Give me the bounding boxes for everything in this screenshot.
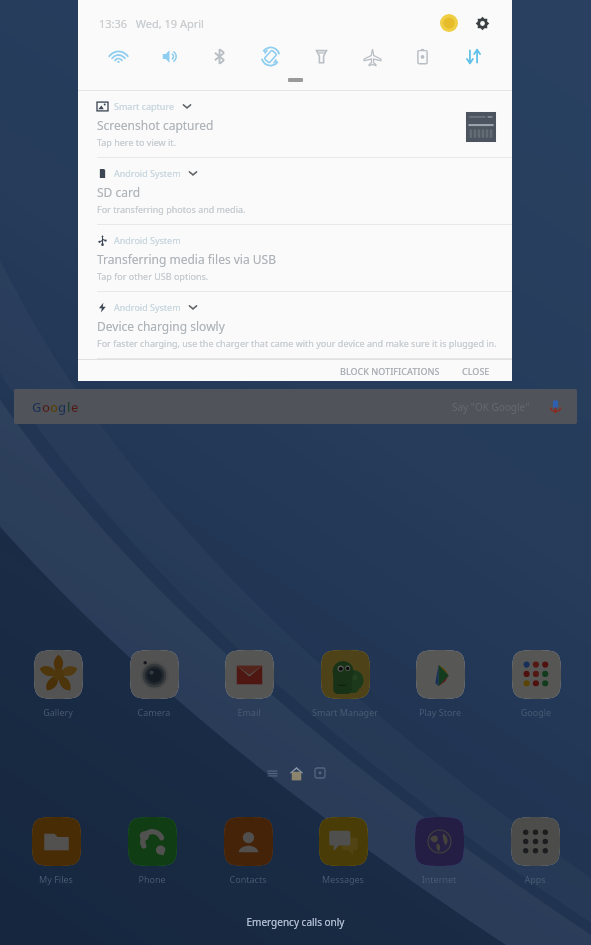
button[interactable]: Blue light filter bbox=[437, 11, 461, 35]
staticText: BLOCK NOTIFICATIONS bbox=[340, 365, 440, 377]
button[interactable]: Bluetooth bbox=[204, 41, 234, 71]
staticText: Smart Manager bbox=[305, 706, 385, 718]
staticText: Transferring media files via USB bbox=[97, 251, 276, 267]
staticText: Phone bbox=[112, 873, 192, 885]
button[interactable]: Smart Manager bbox=[305, 650, 385, 718]
button[interactable]: Android System bbox=[78, 158, 512, 225]
button[interactable]: Phone bbox=[112, 817, 192, 885]
staticText: Internet bbox=[399, 873, 479, 885]
staticText: Tap for other USB options. bbox=[97, 270, 209, 282]
staticText: CLOSE bbox=[462, 365, 490, 377]
button[interactable]: Messages bbox=[303, 817, 383, 885]
button[interactable]: Power saving bbox=[407, 41, 437, 71]
staticText: Tap here to view it. bbox=[97, 136, 177, 148]
staticText: Android System bbox=[114, 301, 181, 313]
button[interactable]: Wi-Fi bbox=[103, 41, 133, 71]
staticText: Email bbox=[209, 706, 289, 718]
staticText: Contacts bbox=[208, 873, 288, 885]
button[interactable]: Android System bbox=[78, 292, 512, 359]
staticText: Screenshot captured bbox=[97, 117, 214, 133]
staticText: G bbox=[32, 398, 42, 416]
button[interactable]: Email bbox=[209, 650, 289, 718]
button[interactable]: Flashlight bbox=[306, 41, 336, 71]
staticText: 13:36 Wed, 19 April bbox=[99, 16, 204, 31]
button[interactable]: Airplane mode bbox=[357, 41, 387, 71]
button[interactable]: Settings bbox=[470, 11, 494, 35]
staticText: Messages bbox=[303, 873, 383, 885]
button[interactable]: Play Store bbox=[400, 650, 480, 718]
button[interactable]: Camera bbox=[114, 650, 194, 718]
staticText: Android System bbox=[114, 167, 181, 179]
staticText: Device charging slowly bbox=[97, 318, 225, 334]
staticText: Say "OK Google" bbox=[452, 400, 530, 414]
button[interactable]: Home page bbox=[288, 765, 304, 781]
button[interactable]: CLOSE bbox=[456, 361, 496, 381]
staticText: l bbox=[67, 398, 71, 416]
staticText: For transferring photos and media. bbox=[97, 203, 246, 215]
staticText: SD card bbox=[97, 184, 141, 200]
staticText: Android System bbox=[114, 234, 181, 246]
button[interactable]: Gallery bbox=[18, 650, 98, 718]
button[interactable]: Sound bbox=[154, 41, 184, 71]
other: Voice search bbox=[547, 398, 564, 415]
button[interactable]: Smart capture bbox=[78, 91, 512, 158]
staticText: For faster charging, use the charger tha… bbox=[97, 337, 497, 349]
button[interactable]: Briefing page bbox=[264, 765, 280, 781]
button[interactable]: Next page bbox=[312, 765, 328, 781]
button[interactable]: Mobile data bbox=[458, 41, 488, 71]
staticText: Smart capture bbox=[114, 100, 175, 112]
button[interactable]: Internet bbox=[399, 817, 479, 885]
button[interactable]: Auto rotate bbox=[255, 41, 285, 71]
button[interactable]: Contacts bbox=[208, 817, 288, 885]
button[interactable]: Google bbox=[496, 650, 576, 718]
button[interactable]: Apps bbox=[495, 817, 575, 885]
staticText: g bbox=[58, 398, 67, 416]
staticText: e bbox=[71, 398, 79, 416]
staticText: Camera bbox=[114, 706, 194, 718]
staticText: Play Store bbox=[400, 706, 480, 718]
button[interactable]: Android System bbox=[78, 225, 512, 292]
staticText: Gallery bbox=[18, 706, 98, 718]
staticText: Google bbox=[496, 706, 576, 718]
staticText: My Files bbox=[16, 873, 96, 885]
button[interactable]: BLOCK NOTIFICATIONS bbox=[334, 361, 446, 381]
button[interactable]: My Files bbox=[16, 817, 96, 885]
staticText: o bbox=[50, 398, 58, 416]
staticText: Apps bbox=[495, 873, 575, 885]
button[interactable]: G bbox=[14, 389, 577, 424]
staticText: o bbox=[42, 398, 50, 416]
staticText: Emergency calls only bbox=[0, 915, 591, 929]
